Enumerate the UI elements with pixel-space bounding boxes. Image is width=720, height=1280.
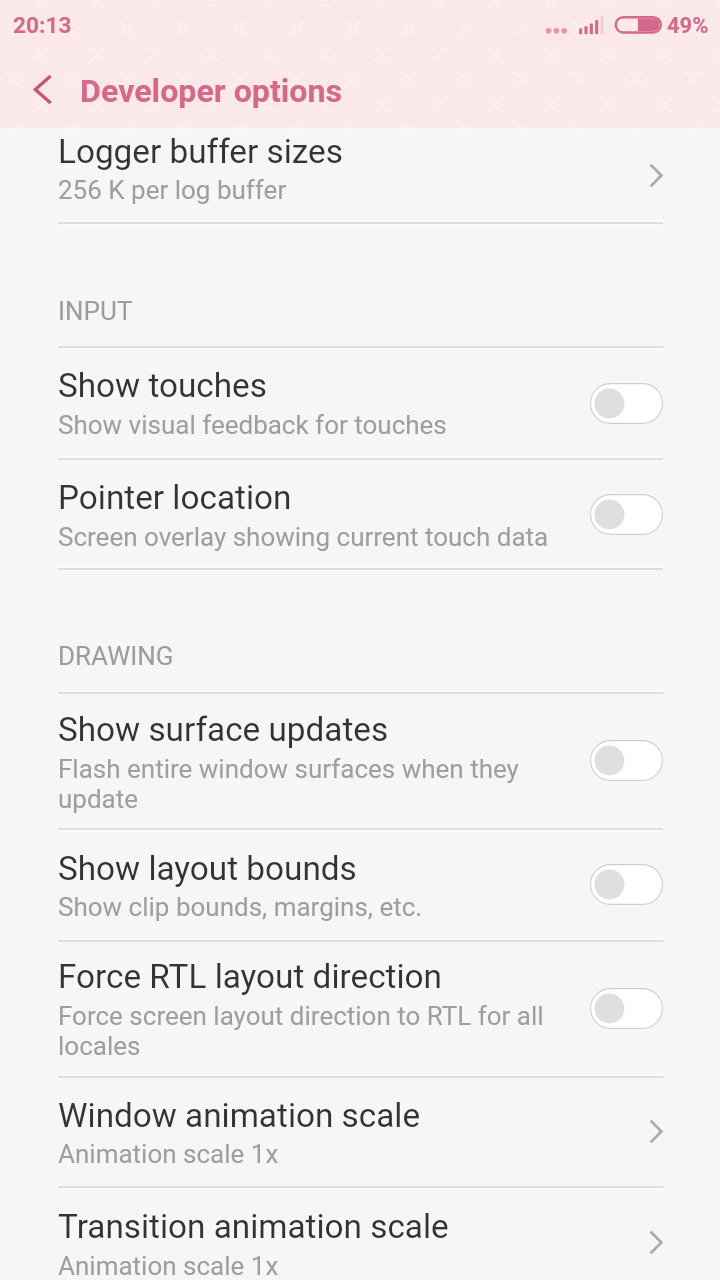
staticText: Transition animation scale — [58, 1207, 449, 1246]
staticText: Show clip bounds, margins, etc. — [58, 892, 423, 922]
button[interactable]: Show layout bounds — [0, 829, 720, 940]
button[interactable]: Back — [0, 60, 78, 128]
staticText: Flash entire window surfaces when they — [58, 754, 519, 784]
staticText: INPUT — [58, 296, 133, 326]
staticText: DRAWING — [58, 641, 174, 671]
button[interactable]: Toggle Pointer location — [585, 459, 720, 569]
button[interactable]: Open Logger buffer sizes — [585, 128, 720, 223]
staticText: Logger buffer sizes — [58, 132, 343, 171]
staticText: Developer options — [80, 72, 343, 110]
button[interactable]: Pointer location — [0, 459, 720, 569]
staticText: Animation scale 1x — [58, 1139, 279, 1169]
staticText: Show layout bounds — [58, 849, 357, 888]
button[interactable]: Show touches — [0, 347, 720, 459]
staticText: 256 K per log buffer — [58, 175, 287, 205]
staticText: Show visual feedback for touches — [58, 410, 447, 440]
button[interactable]: Show surface updates — [0, 692, 720, 829]
staticText: Force screen layout direction to RTL for… — [58, 1001, 544, 1031]
staticText: 20:13 — [13, 12, 72, 39]
button[interactable]: Window animation scale — [0, 1076, 720, 1187]
button[interactable]: Toggle Show surface updates — [585, 692, 720, 829]
staticText: Show surface updates — [58, 710, 389, 749]
staticText: Animation scale 1x — [58, 1251, 279, 1280]
button[interactable]: Transition animation scale — [0, 1187, 720, 1280]
button[interactable]: Toggle Show layout bounds — [585, 829, 720, 940]
staticText: Screen overlay showing current touch dat… — [58, 522, 549, 552]
button[interactable]: Open Transition animation scale — [585, 1187, 720, 1280]
button[interactable]: Open Window animation scale — [585, 1076, 720, 1187]
button[interactable]: Toggle Show touches — [585, 347, 720, 459]
button[interactable]: Logger buffer sizes — [0, 128, 720, 223]
staticText: Force RTL layout direction — [58, 957, 442, 996]
staticText: locales — [58, 1031, 141, 1061]
staticText: update — [58, 784, 139, 814]
staticText: Show touches — [58, 366, 267, 405]
staticText: 49% — [667, 13, 709, 39]
button[interactable]: Force RTL layout direction — [0, 940, 720, 1076]
staticText: Pointer location — [58, 478, 292, 517]
button[interactable]: Toggle Force RTL layout direction — [585, 940, 720, 1076]
staticText: Window animation scale — [58, 1096, 421, 1135]
